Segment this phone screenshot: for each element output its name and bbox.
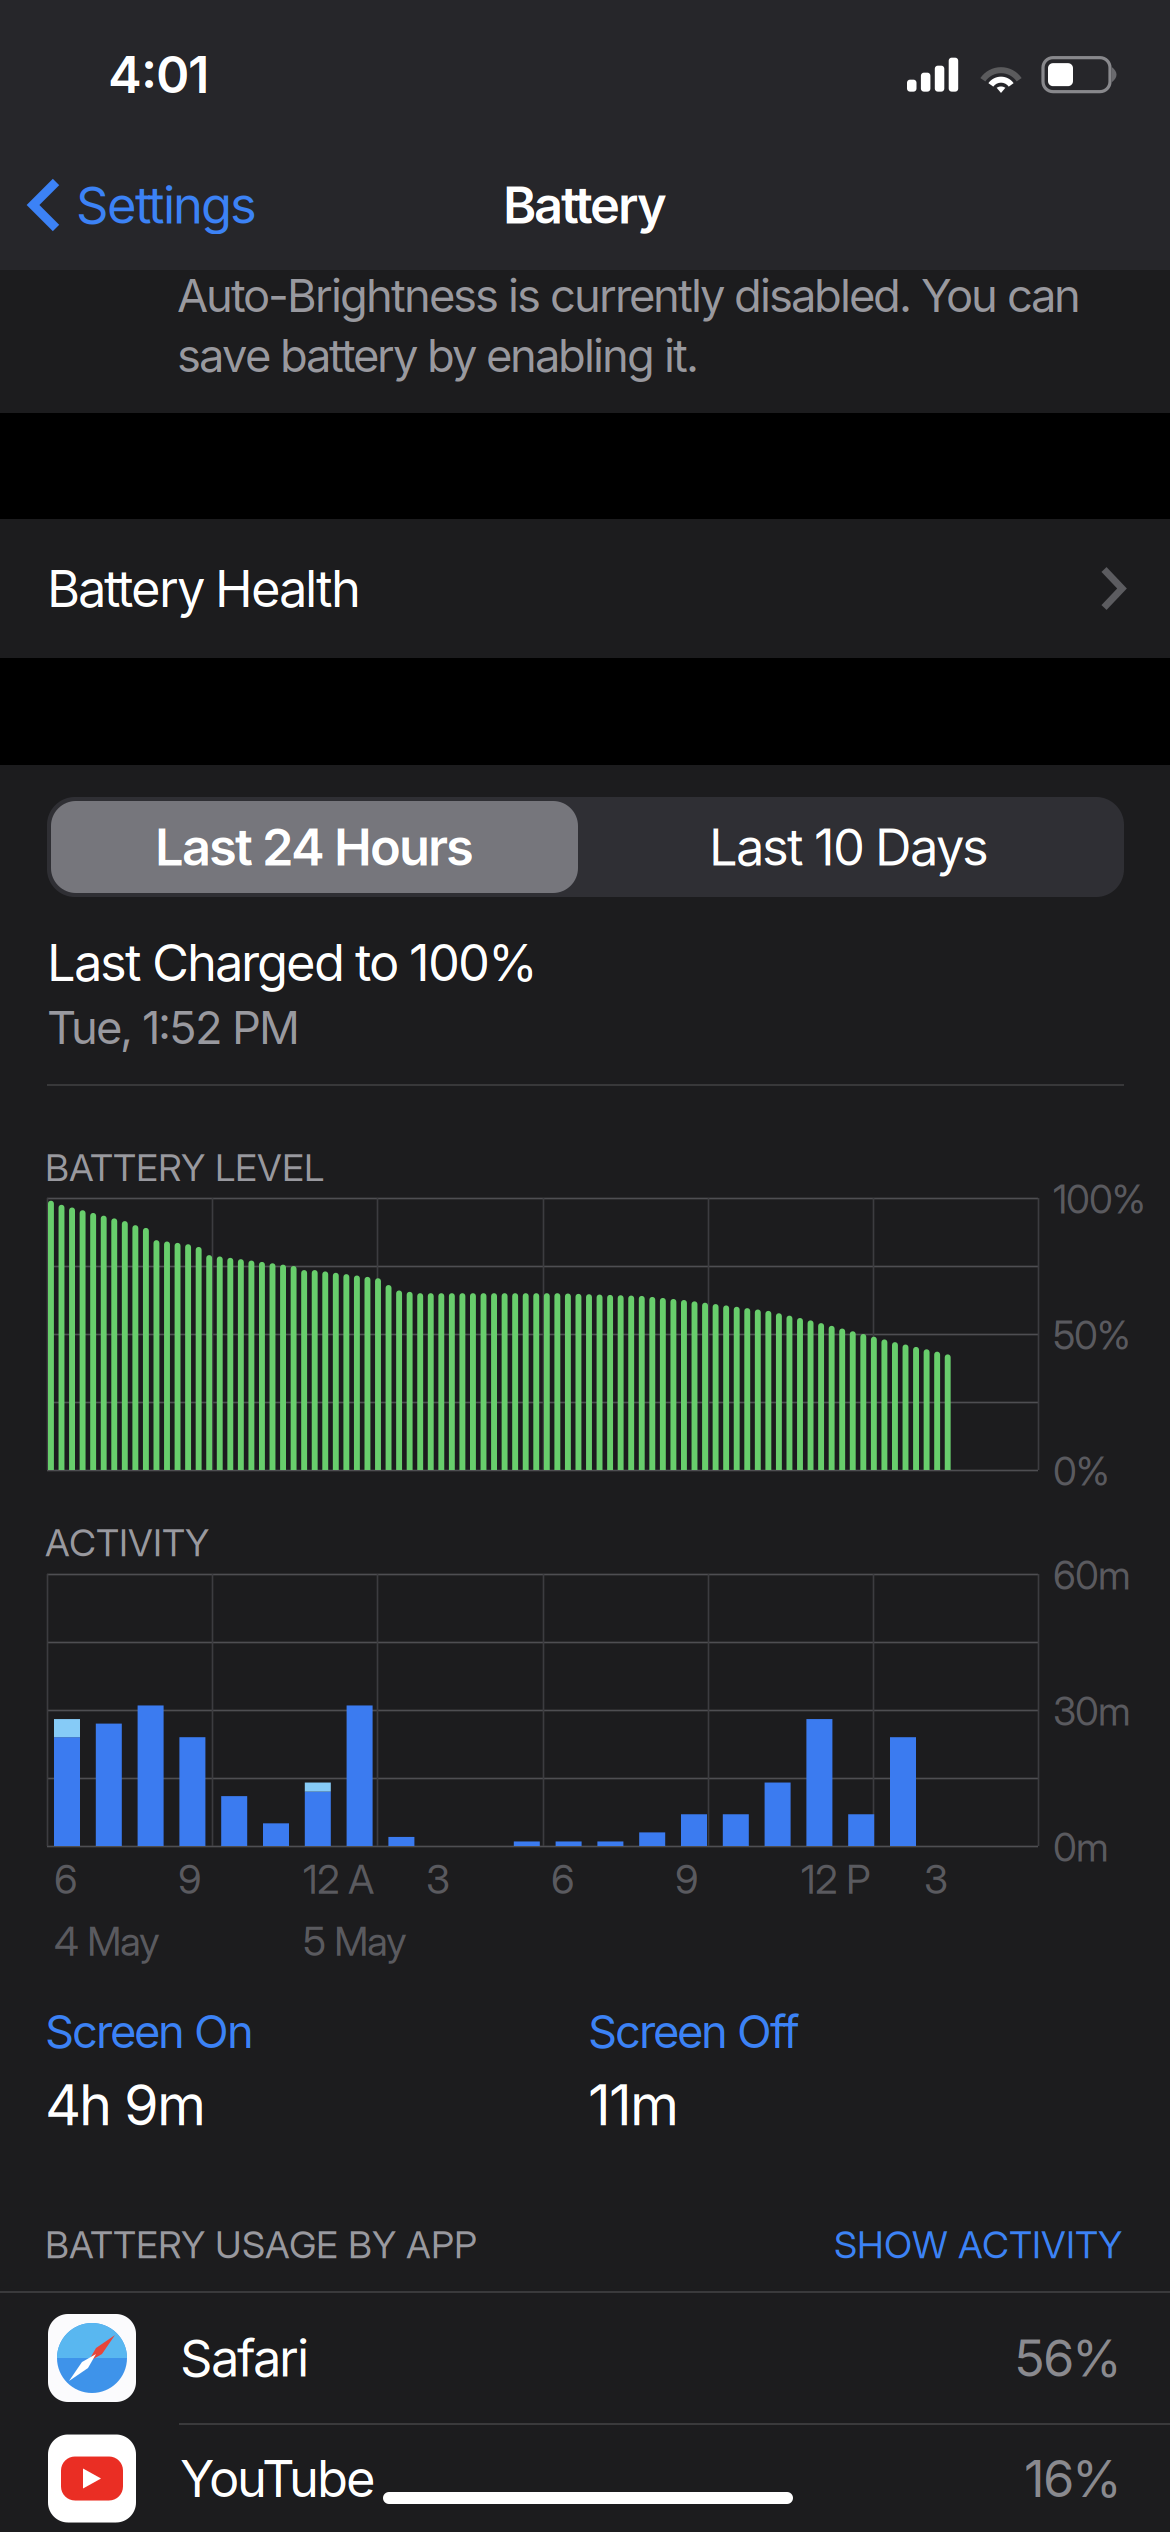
staticText: 9	[178, 1855, 202, 1903]
staticText: 12 A	[303, 1855, 374, 1903]
staticText: Last 10 Days	[709, 816, 989, 878]
button[interactable]: Battery Health	[0, 519, 1170, 658]
staticText: Screen Off	[588, 2004, 800, 2059]
staticText: 5 May	[303, 1917, 407, 1965]
staticText: Tue, 1:52 PM	[47, 1000, 300, 1055]
staticText: 3	[426, 1855, 450, 1903]
staticText: BATTERY USAGE BY APP	[45, 2222, 477, 2267]
staticText: save battery by enabling it.	[177, 328, 699, 383]
staticText: 6	[54, 1855, 78, 1903]
button[interactable]: Last 24 Hours	[51, 801, 578, 893]
button[interactable]: SHOW ACTIVITY	[834, 2222, 1122, 2267]
staticText: 0%	[1053, 1448, 1110, 1495]
button[interactable]: YouTube	[0, 2425, 1170, 2532]
staticText: 4h 9m	[45, 2071, 206, 2139]
staticText: 16%	[1024, 2448, 1122, 2509]
staticText: 9	[675, 1855, 699, 1903]
staticText: Last 24 Hours	[155, 816, 474, 878]
staticText: YouTube	[180, 2448, 376, 2509]
staticText: 4 May	[54, 1917, 160, 1965]
button[interactable]: Settings	[0, 140, 257, 270]
staticText: BATTERY LEVEL	[45, 1145, 324, 1190]
staticText: 12 P	[801, 1855, 871, 1903]
staticText: 100%	[1053, 1176, 1146, 1223]
staticText: 56%	[1014, 2327, 1122, 2389]
staticText: 50%	[1053, 1312, 1131, 1359]
staticText: Safari	[180, 2327, 309, 2389]
staticText: SHOW ACTIVITY	[834, 2222, 1122, 2267]
staticText: ACTIVITY	[45, 1520, 209, 1565]
staticText: 11m	[588, 2071, 679, 2139]
staticText: 0m	[1053, 1824, 1109, 1871]
staticText: 6	[551, 1855, 575, 1903]
staticText: Settings	[76, 174, 257, 236]
button[interactable]: Safari	[0, 2293, 1170, 2423]
staticText: 60m	[1053, 1552, 1131, 1599]
button[interactable]: Last 10 Days	[578, 801, 1120, 893]
staticText: Auto-Brightness is currently disabled. Y…	[177, 268, 1081, 323]
staticText: 3	[924, 1855, 948, 1903]
staticText: 4:01	[108, 44, 209, 105]
staticText: 30m	[1053, 1688, 1131, 1735]
staticText: Battery Health	[47, 558, 361, 619]
staticText: Screen On	[45, 2004, 254, 2059]
staticText: Battery	[503, 174, 667, 236]
staticText: Last Charged to 100%	[47, 932, 538, 993]
